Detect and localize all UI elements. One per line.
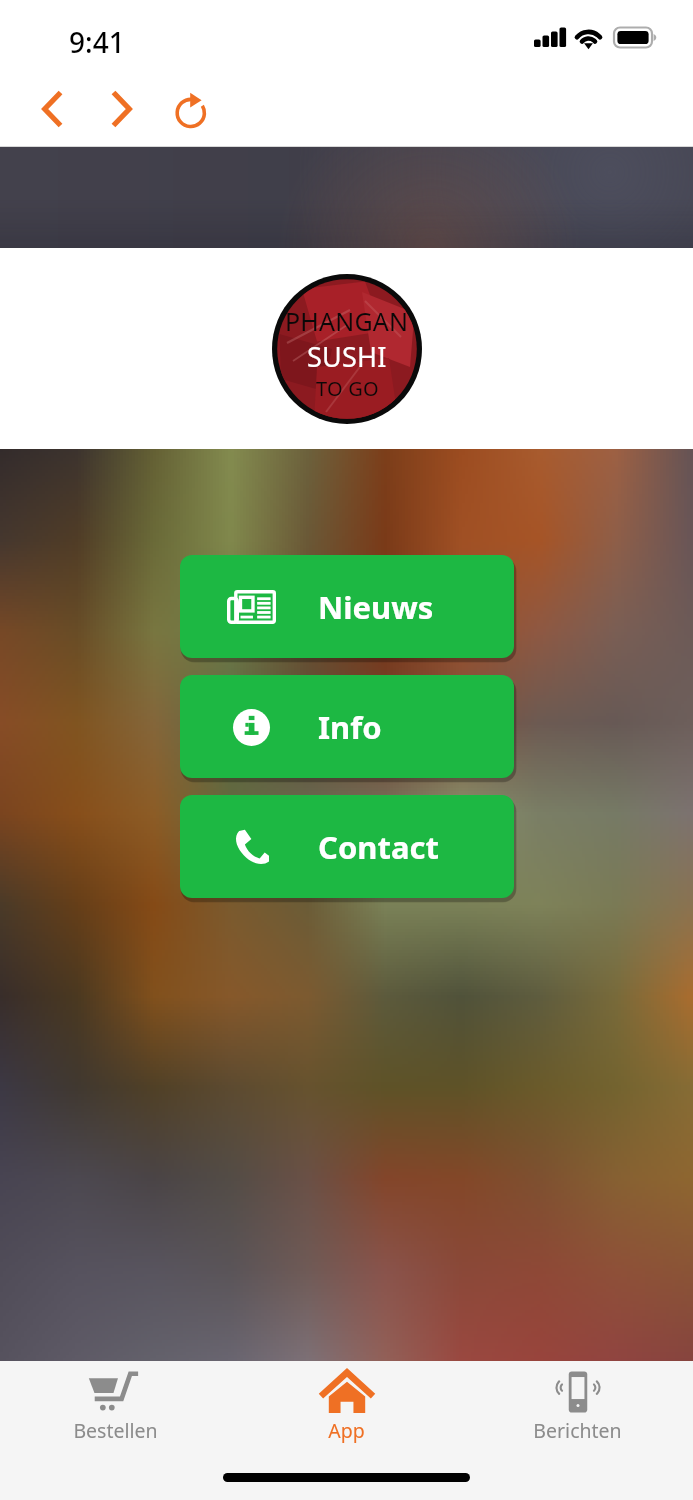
staticText: Berichten xyxy=(533,1417,622,1444)
staticText: Info xyxy=(318,706,382,748)
staticText: SUSHI xyxy=(307,338,387,375)
button[interactable]: Berichten xyxy=(462,1361,693,1451)
staticText: PHANGAN xyxy=(285,304,409,338)
button[interactable]: Reload xyxy=(158,74,228,144)
staticText: Contact xyxy=(318,826,439,868)
button[interactable]: Bestellen xyxy=(0,1361,231,1451)
staticText: Nieuws xyxy=(318,586,434,628)
staticText: App xyxy=(328,1417,365,1444)
button[interactable]: Info xyxy=(180,675,514,778)
button[interactable]: Forward xyxy=(87,74,157,144)
button[interactable]: Contact xyxy=(180,795,514,898)
staticText: Bestellen xyxy=(73,1417,158,1444)
staticText: 9:41 xyxy=(69,23,125,61)
button[interactable]: Nieuws xyxy=(180,555,514,658)
button[interactable]: Back xyxy=(16,74,86,144)
button[interactable]: App xyxy=(231,1361,462,1451)
staticText: TO GO xyxy=(316,375,379,402)
